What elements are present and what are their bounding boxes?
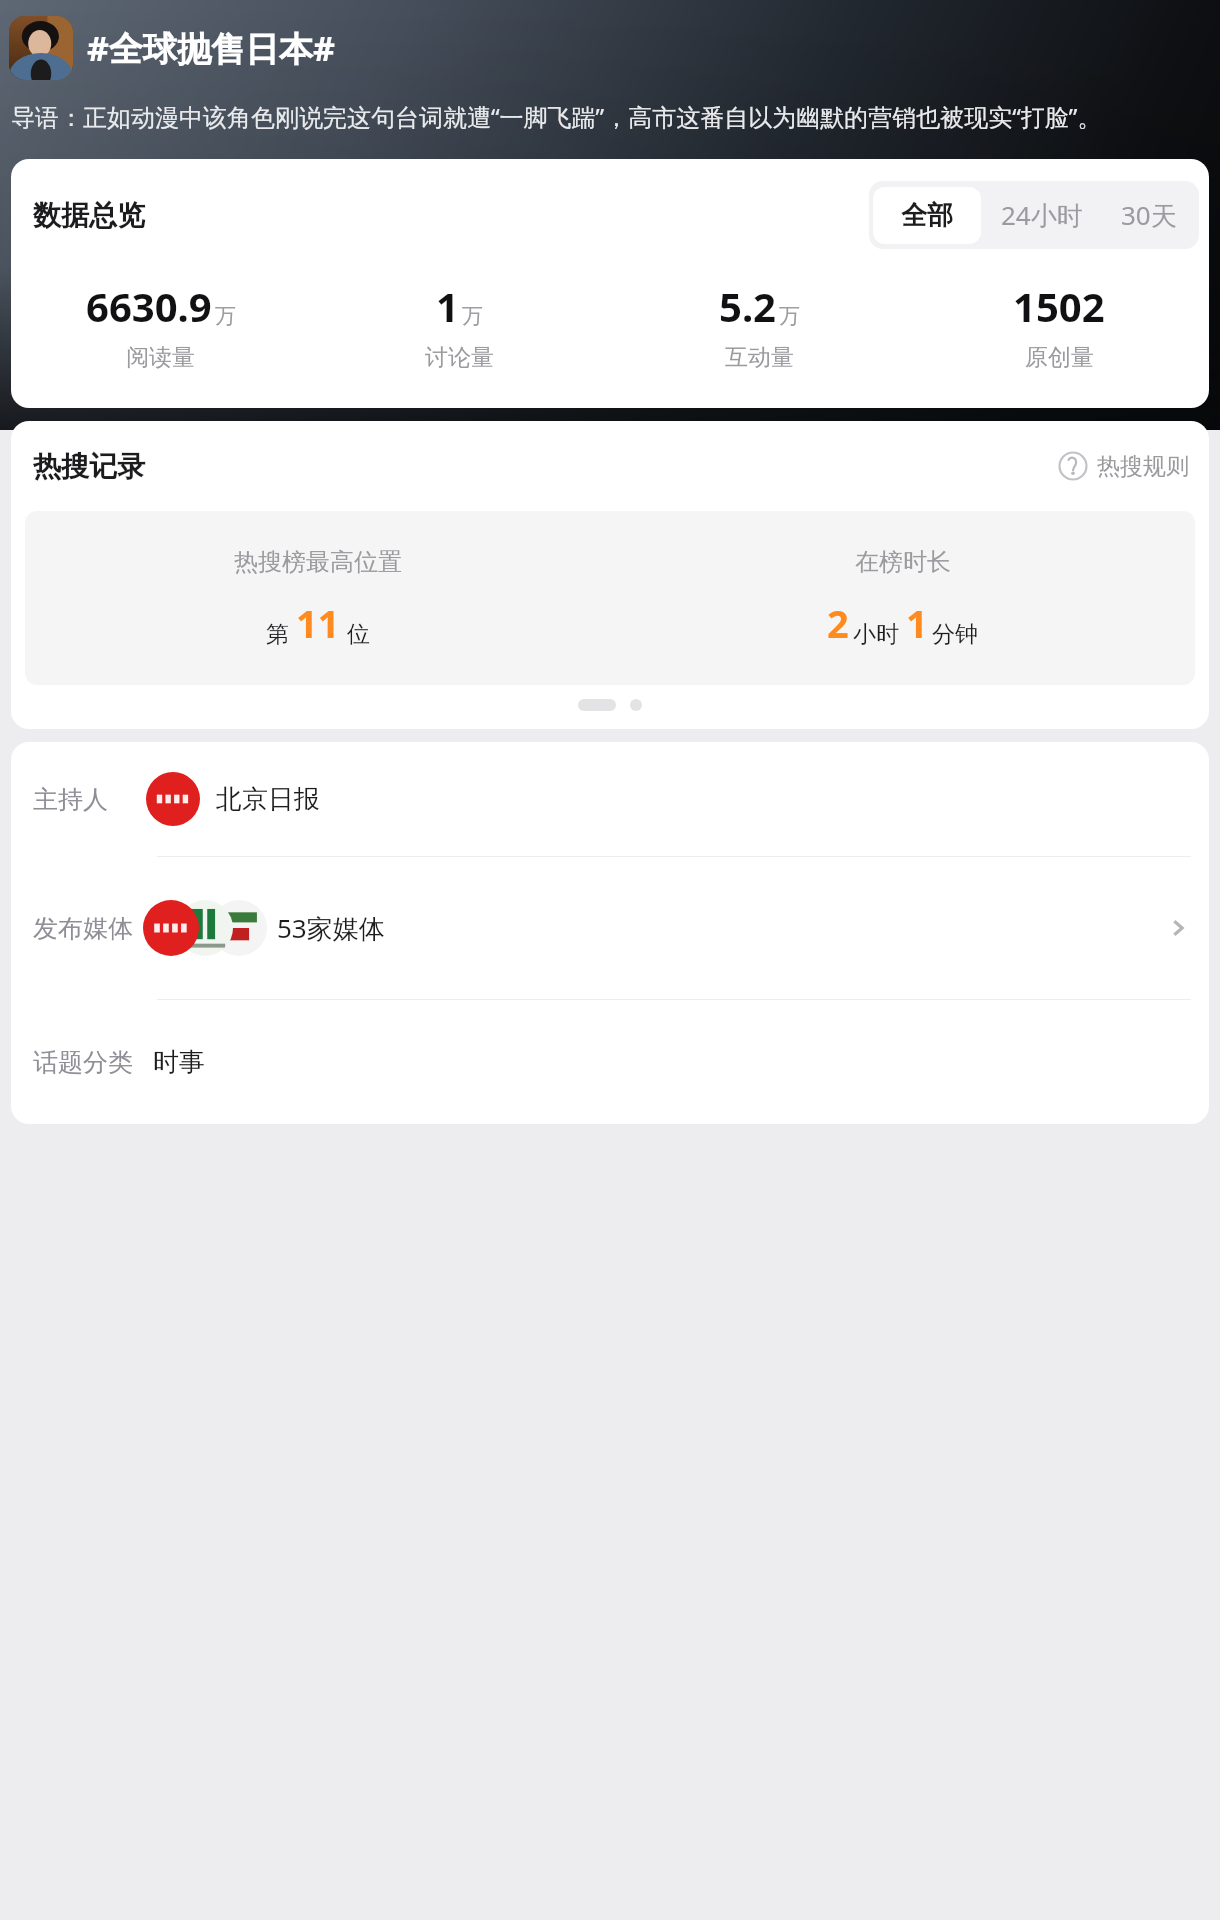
staticText: 主持人 xyxy=(33,784,108,815)
staticText: 位 xyxy=(347,620,370,649)
staticText: 6630.9 xyxy=(86,279,212,333)
button[interactable]: 热搜规则 xyxy=(1054,447,1193,485)
staticText: 北京日报 xyxy=(216,783,320,816)
staticText: 阅读量 xyxy=(126,343,195,372)
button[interactable]: 发布媒体 xyxy=(11,857,1209,999)
staticText: 互动量 xyxy=(725,343,794,372)
staticText: 53家媒体 xyxy=(277,910,385,946)
staticText: 24小时 xyxy=(1001,197,1083,233)
staticText: 话题分类 xyxy=(33,1047,133,1078)
staticText: 全部 xyxy=(901,199,953,232)
staticText: 在榜时长 xyxy=(855,547,951,577)
staticText: 发布媒体 xyxy=(33,913,133,944)
staticText: 导语：正如动漫中该角色刚说完这句台词就遭“一脚飞踹”，高市这番自以为幽默的营销也… xyxy=(11,100,1102,133)
button[interactable]: 30天 xyxy=(1103,185,1195,245)
staticText: 万 xyxy=(779,303,800,329)
staticText: 万 xyxy=(215,303,236,329)
button[interactable]: 话题分类 xyxy=(11,1000,1209,1124)
button[interactable]: 热搜榜最高位置 xyxy=(25,511,1195,685)
button[interactable]: Topic avatar xyxy=(9,16,73,80)
staticText: 讨论量 xyxy=(425,343,494,372)
staticText: #全球抛售日本# xyxy=(87,25,335,71)
staticText: 万 xyxy=(462,303,483,329)
button[interactable]: 全部 xyxy=(873,187,981,244)
other: More media xyxy=(1165,915,1191,941)
staticText: 热搜记录 xyxy=(33,449,145,484)
staticText: 11 xyxy=(296,597,340,649)
staticText: 数据总览 xyxy=(33,198,145,233)
button[interactable]: 主持人 xyxy=(11,742,1209,856)
staticText: 原创量 xyxy=(1025,343,1094,372)
staticText: 热搜榜最高位置 xyxy=(234,547,402,577)
staticText: 1502 xyxy=(1013,279,1105,333)
staticText: 小时 xyxy=(853,620,899,649)
staticText: 时事 xyxy=(153,1046,205,1079)
staticText: 第 xyxy=(266,620,289,649)
staticText: 30天 xyxy=(1121,197,1177,233)
button[interactable]: 24小时 xyxy=(981,185,1103,245)
staticText: 分钟 xyxy=(932,620,978,649)
staticText: 2 xyxy=(827,597,849,649)
staticText: 热搜规则 xyxy=(1097,452,1189,481)
staticText: 1 xyxy=(906,597,928,649)
staticText: 5.2 xyxy=(719,279,776,333)
staticText: 1 xyxy=(436,279,459,333)
